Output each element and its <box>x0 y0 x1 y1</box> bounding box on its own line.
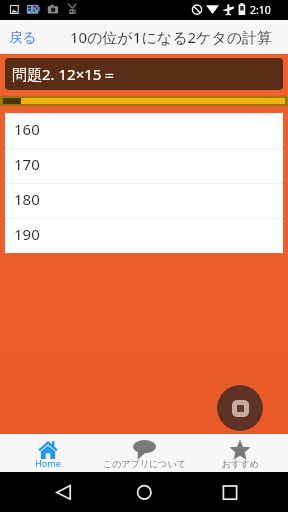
button[interactable]: 戻る <box>0 20 46 54</box>
button[interactable]: Home <box>120 472 168 512</box>
button[interactable]: このアプリについて <box>96 434 192 472</box>
staticText: 戻る <box>9 29 37 46</box>
button[interactable]: Home <box>0 434 96 472</box>
staticText: 190 <box>14 224 40 244</box>
button[interactable]: Back <box>40 472 88 512</box>
staticText: 160 <box>14 119 40 139</box>
staticText: Home <box>35 457 61 469</box>
button[interactable]: Recent apps <box>206 472 254 512</box>
button[interactable]: 問題2. 12×15＝ <box>5 58 283 90</box>
button[interactable]: Stop <box>217 385 263 431</box>
staticText: 問題2. 12×15＝ <box>12 64 117 84</box>
button[interactable]: 160 <box>5 113 283 148</box>
staticText: 170 <box>14 154 40 174</box>
staticText: 180 <box>14 189 40 209</box>
staticText: おすすめ <box>222 458 259 469</box>
button[interactable]: 180 <box>5 183 283 218</box>
button[interactable]: おすすめ <box>192 434 288 472</box>
staticText: このアプリについて <box>103 458 186 469</box>
staticText: 10の位が1になる2ケタの計算 <box>70 27 273 47</box>
button[interactable]: 190 <box>5 218 283 253</box>
button[interactable]: 170 <box>5 148 283 183</box>
staticText: 2:10 <box>250 3 271 17</box>
